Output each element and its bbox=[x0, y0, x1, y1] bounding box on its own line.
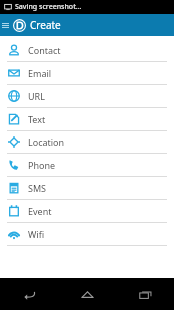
staticText: Phone bbox=[28, 159, 56, 171]
button[interactable]: Back bbox=[0, 278, 58, 310]
button[interactable]: Contact bbox=[0, 39, 174, 61]
staticText: Email bbox=[28, 67, 52, 79]
button[interactable]: URL bbox=[0, 85, 174, 107]
button[interactable]: Open navigation drawer bbox=[0, 14, 11, 36]
staticText: Create bbox=[30, 18, 61, 32]
button[interactable]: Text bbox=[0, 108, 174, 130]
staticText: SMS bbox=[28, 182, 47, 194]
staticText: Wifi bbox=[28, 228, 45, 240]
staticText: URL bbox=[28, 90, 45, 102]
staticText: Event bbox=[28, 205, 52, 217]
button[interactable]: Event bbox=[0, 200, 174, 222]
staticText: Location bbox=[28, 136, 65, 148]
button[interactable]: Location bbox=[0, 131, 174, 153]
staticText: Text bbox=[28, 113, 46, 125]
button[interactable]: Email bbox=[0, 62, 174, 84]
staticText: Saving screenshot... bbox=[15, 2, 82, 12]
button[interactable]: Wifi bbox=[0, 223, 174, 245]
button[interactable]: Phone bbox=[0, 154, 174, 176]
button[interactable]: Home bbox=[58, 278, 116, 310]
button[interactable]: Recent apps bbox=[116, 278, 174, 310]
staticText: Contact bbox=[28, 44, 61, 56]
button[interactable]: SMS bbox=[0, 177, 174, 199]
